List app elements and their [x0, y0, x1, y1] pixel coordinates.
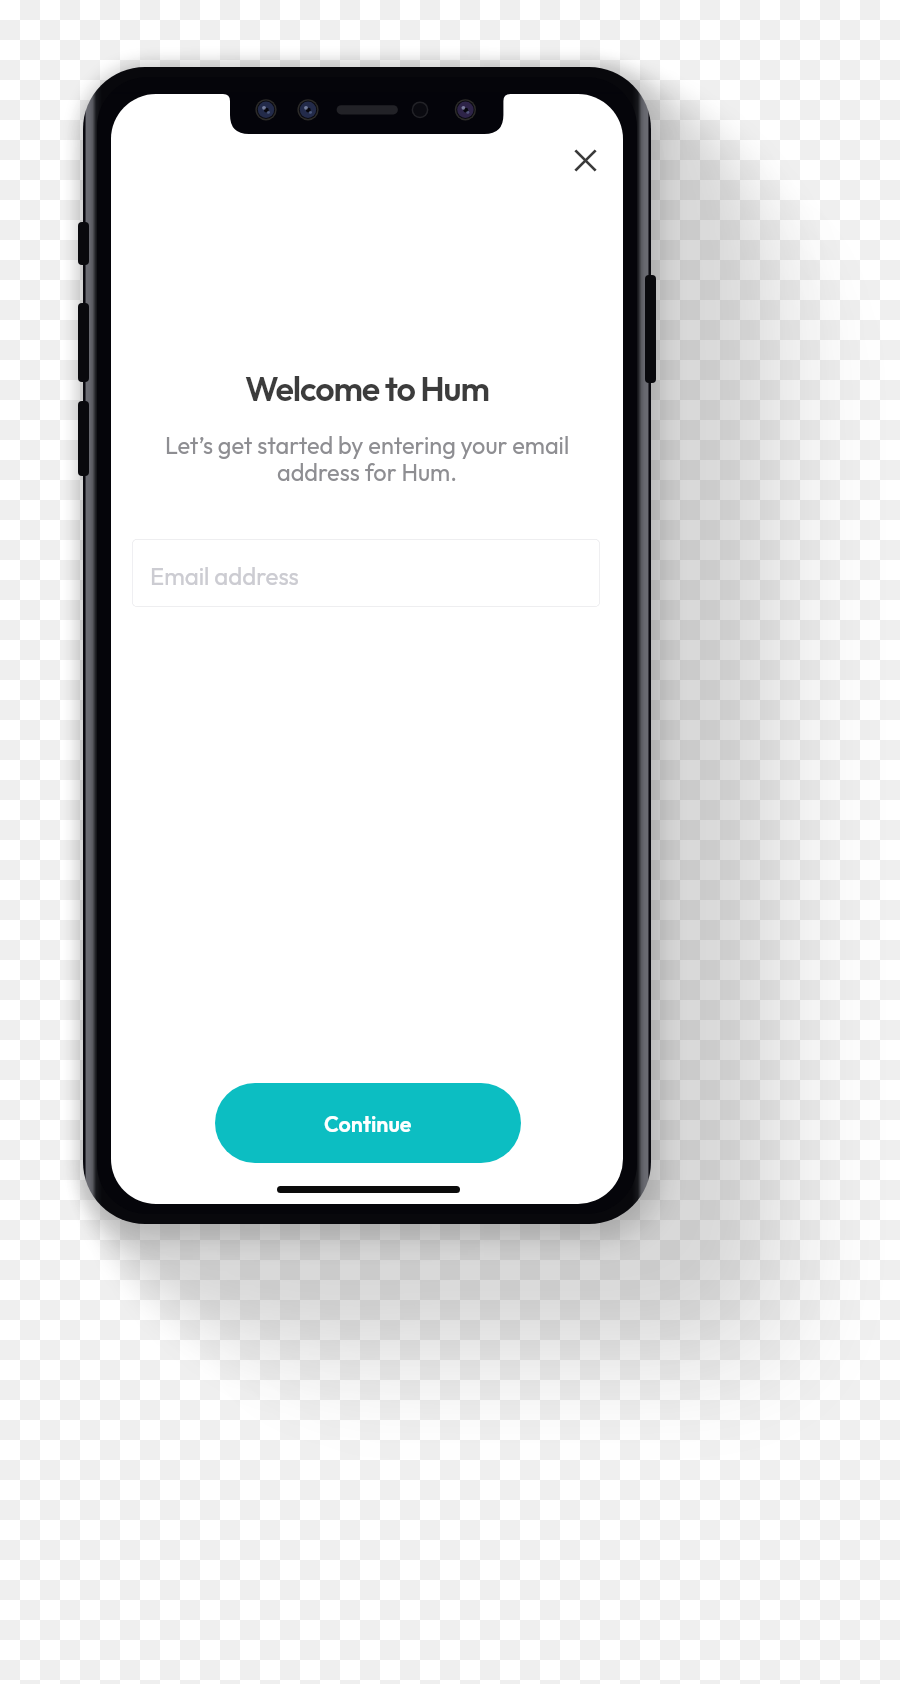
staticText: Continue [324, 1110, 412, 1137]
button[interactable]: Email address [132, 539, 600, 607]
button[interactable]: Continue [215, 1083, 521, 1163]
staticText: Welcome to Hum [245, 367, 489, 410]
staticText: Let’s get started by entering your email… [160, 430, 574, 487]
button[interactable]: Close [552, 127, 619, 194]
staticText: Email address [150, 561, 299, 591]
